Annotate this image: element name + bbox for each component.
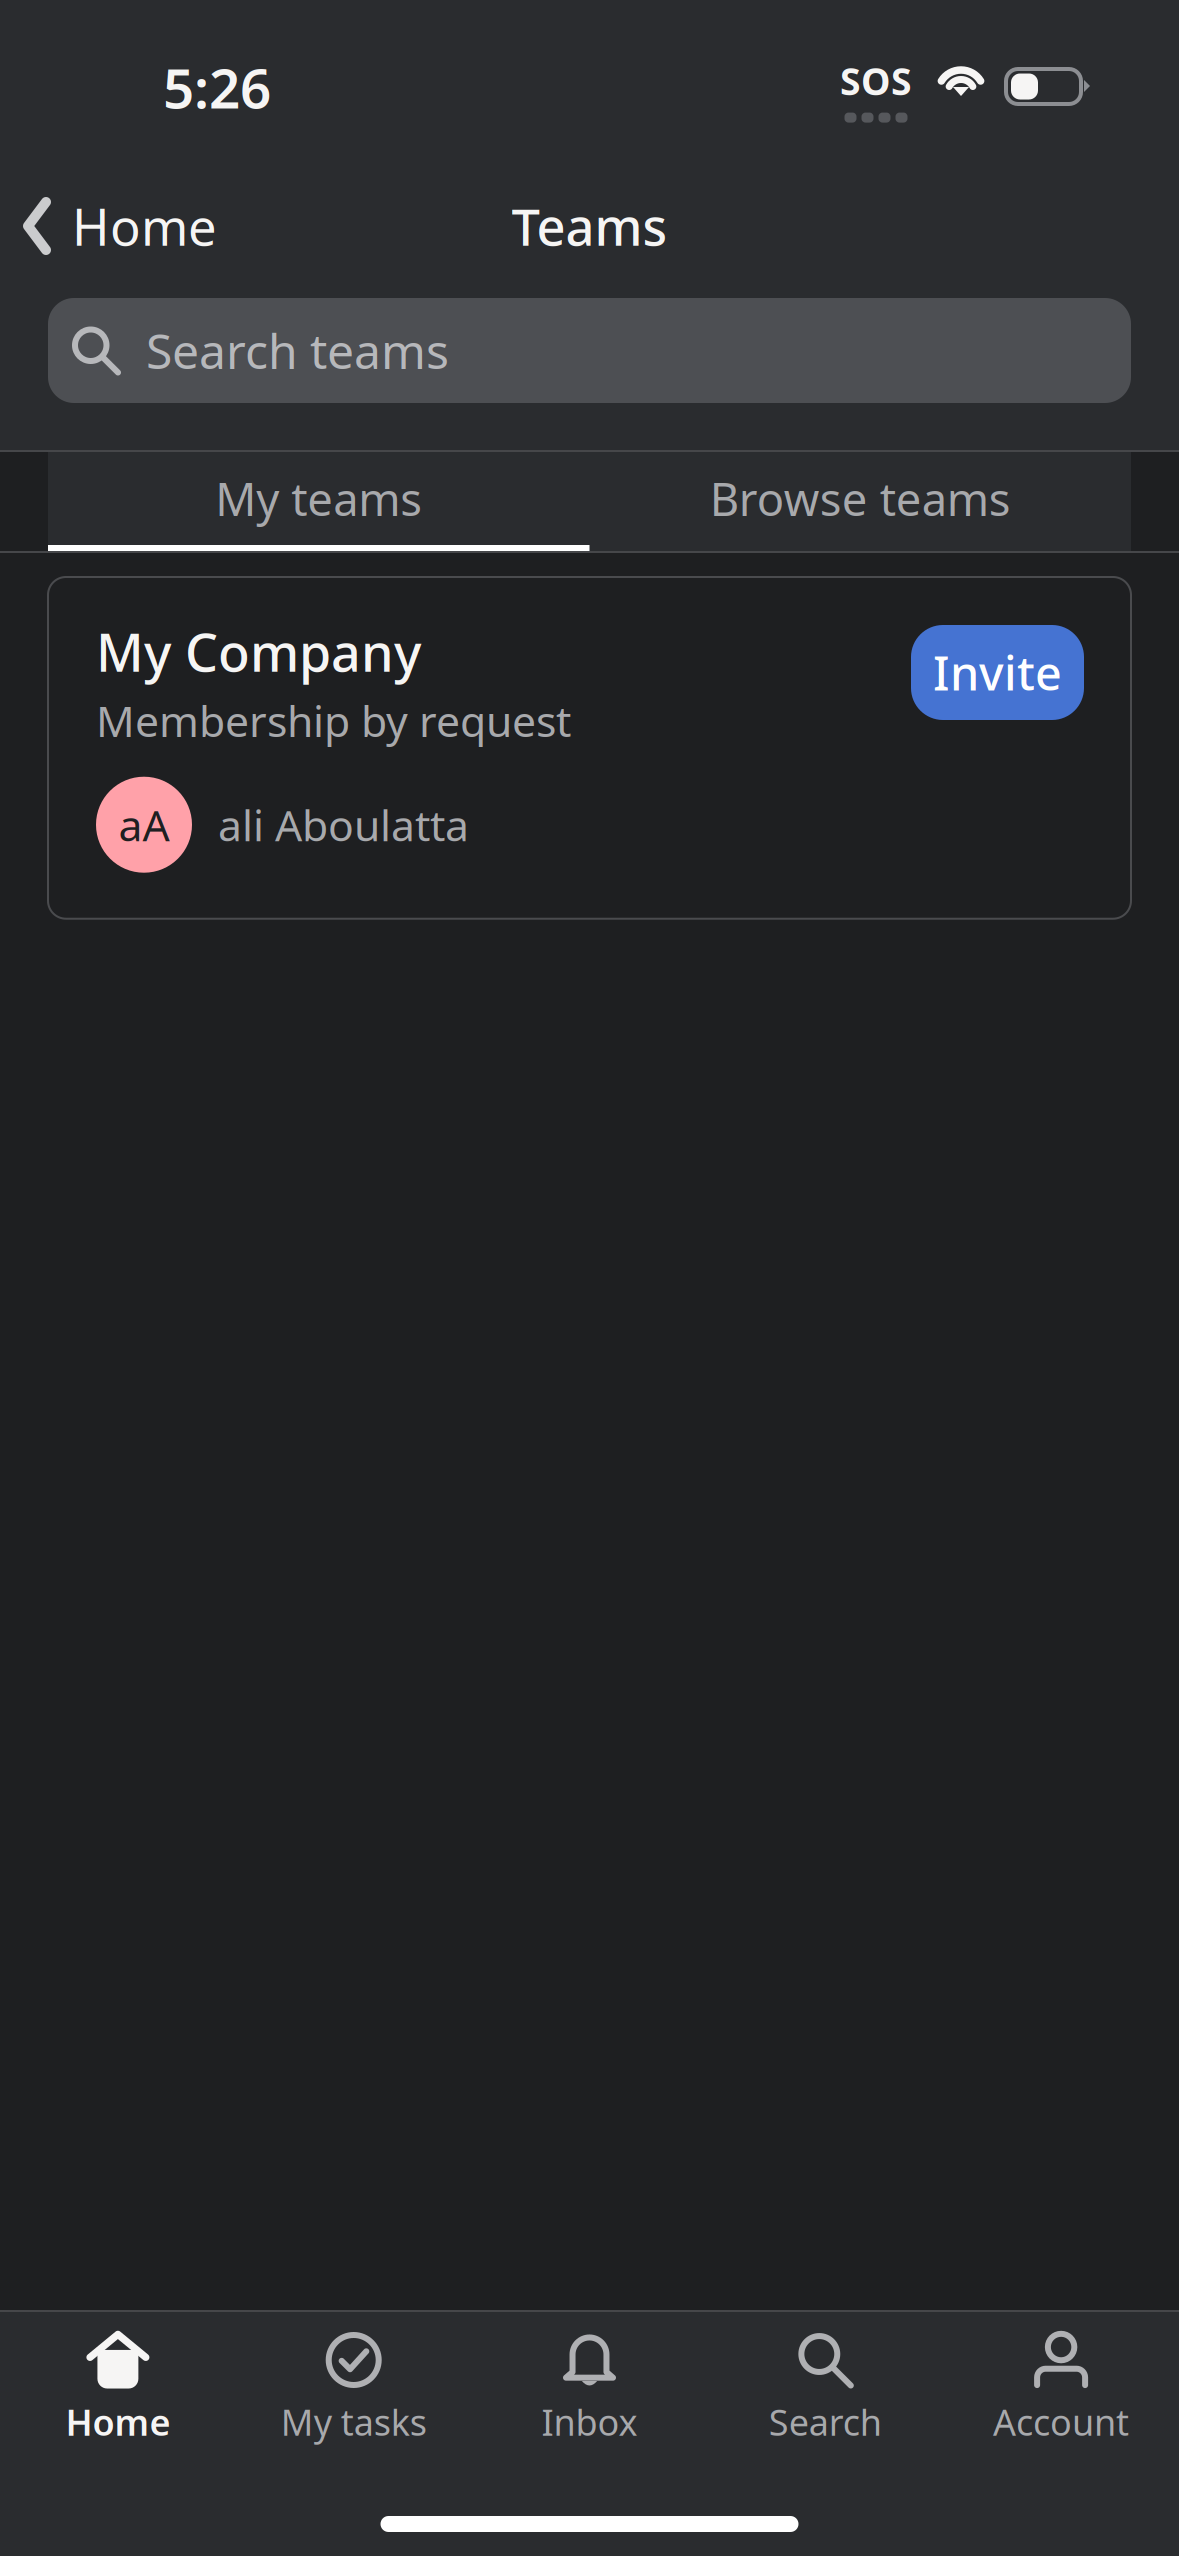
staticText: Invite — [933, 641, 1062, 703]
staticText: Membership by request — [96, 692, 571, 749]
staticText: ali Aboulatta — [218, 796, 469, 853]
staticText: Teams — [511, 192, 667, 260]
button[interactable]: Invite — [911, 625, 1084, 720]
button[interactable]: Account — [943, 2312, 1179, 2446]
staticText: Search teams — [146, 319, 449, 382]
button[interactable]: Home — [0, 176, 217, 276]
staticText: aA — [118, 796, 169, 853]
button[interactable]: Search — [707, 2312, 943, 2446]
staticText: Browse teams — [710, 468, 1011, 529]
button[interactable]: Browse teams — [589, 452, 1131, 551]
staticText: Inbox — [541, 2398, 637, 2446]
staticText: My teams — [215, 468, 422, 529]
staticText: Home — [65, 2398, 170, 2446]
staticText: Account — [993, 2398, 1129, 2446]
button[interactable]: My tasks — [236, 2312, 472, 2446]
button[interactable]: Home — [0, 2312, 236, 2446]
staticText: My Company — [96, 617, 421, 686]
staticText: SOS — [840, 56, 912, 106]
staticText: 5:26 — [163, 51, 271, 124]
button[interactable]: Inbox — [472, 2312, 707, 2446]
button[interactable]: Search teams — [48, 298, 1131, 403]
staticText: Home — [72, 192, 217, 260]
button[interactable]: My teams — [48, 452, 589, 551]
staticText: Search — [769, 2398, 882, 2446]
staticText: My tasks — [281, 2398, 427, 2446]
